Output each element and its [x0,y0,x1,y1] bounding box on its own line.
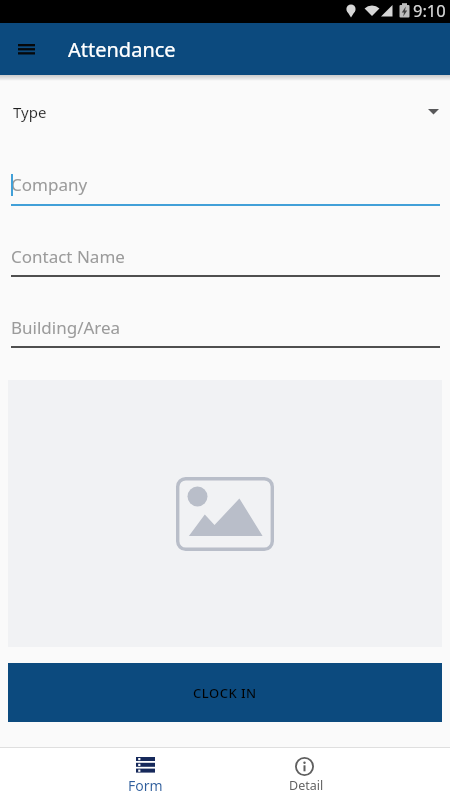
staticText: Type [13,102,47,122]
button[interactable]: Detail [225,748,382,800]
staticText: Contact Name [11,245,125,268]
button[interactable]: Type [0,92,450,132]
button[interactable]: Form [67,748,224,800]
staticText: 9:10 [413,0,446,21]
staticText: Form [128,776,163,795]
button[interactable]: Building/Area [0,303,450,351]
staticText: Company [11,173,88,196]
staticText: CLOCK IN [193,684,257,702]
button[interactable] [8,380,442,647]
button[interactable] [6,25,46,73]
staticText: Detail [289,777,324,794]
button[interactable]: Contact Name [0,232,450,280]
staticText: Attendance [68,36,176,63]
button[interactable]: CLOCK IN [8,663,442,722]
button[interactable]: Company [0,160,450,208]
staticText: Building/Area [11,316,121,339]
